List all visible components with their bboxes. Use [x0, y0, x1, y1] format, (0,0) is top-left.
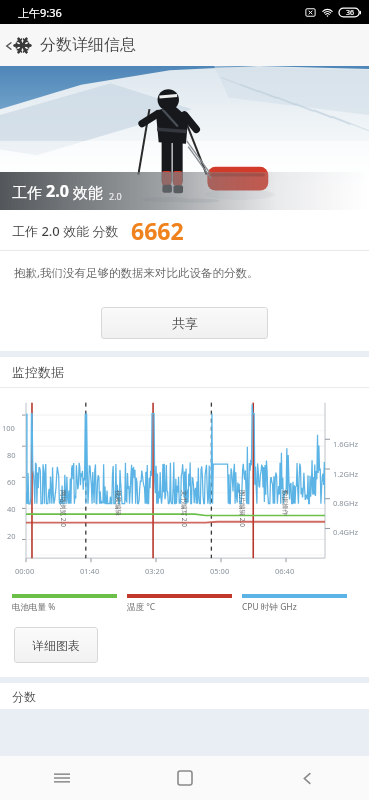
button[interactable]: Home [123, 756, 246, 800]
staticText: 工作 [12, 182, 46, 202]
staticText: 2.0 [109, 190, 122, 202]
staticText: 05:00 [210, 566, 230, 576]
button[interactable]: Back [246, 756, 369, 800]
staticText: 01:40 [80, 566, 100, 576]
staticText: 电池电量 % [12, 601, 56, 613]
staticText: 分数详细信息 [40, 35, 136, 55]
staticText: 视频编辑 [114, 490, 122, 516]
staticText: 2.0 [46, 180, 69, 202]
button[interactable]: Back [0, 24, 36, 66]
staticText: 工作 2.0 效能 分数 [12, 222, 119, 240]
staticText: 6662 [131, 215, 184, 246]
staticText: 网络浏览 2.0 [59, 490, 68, 527]
staticText: 监控数据 [12, 364, 64, 380]
staticText: 100 [2, 423, 15, 433]
staticText: 1.2GHz [333, 469, 359, 479]
button[interactable]: Recent apps [0, 756, 123, 800]
staticText: 0.8GHz [333, 498, 359, 508]
staticText: 文书编写 2.0 [180, 490, 189, 527]
button[interactable]: 共享 [101, 307, 268, 339]
staticText: 抱歉,我们没有足够的数据来对比此设备的分数。 [14, 265, 259, 281]
staticText: 03:20 [145, 566, 165, 576]
staticText: 温度 °C [127, 601, 156, 613]
button[interactable]: 详细图表 [14, 627, 98, 663]
staticText: 效能 [69, 182, 103, 202]
staticText: 60 [7, 477, 16, 487]
staticText: 40 [7, 504, 16, 514]
staticText: 20 [7, 531, 16, 541]
staticText: 00:00 [15, 566, 35, 576]
staticText: 06:40 [275, 566, 295, 576]
staticText: 图片编辑 2.0 [238, 490, 247, 527]
staticText: 共享 [172, 315, 198, 331]
staticText: 上午9:36 [18, 5, 62, 20]
staticText: CPU 时钟 GHz [242, 601, 297, 613]
staticText: 0.4GHz [333, 527, 359, 537]
staticText: 36 [346, 8, 355, 18]
staticText: 1.6GHz [333, 439, 359, 449]
staticText: 数据操作 [281, 490, 289, 516]
staticText: 80 [7, 450, 16, 460]
staticText: 详细图表 [32, 638, 80, 653]
staticText: 分数 [12, 689, 36, 704]
